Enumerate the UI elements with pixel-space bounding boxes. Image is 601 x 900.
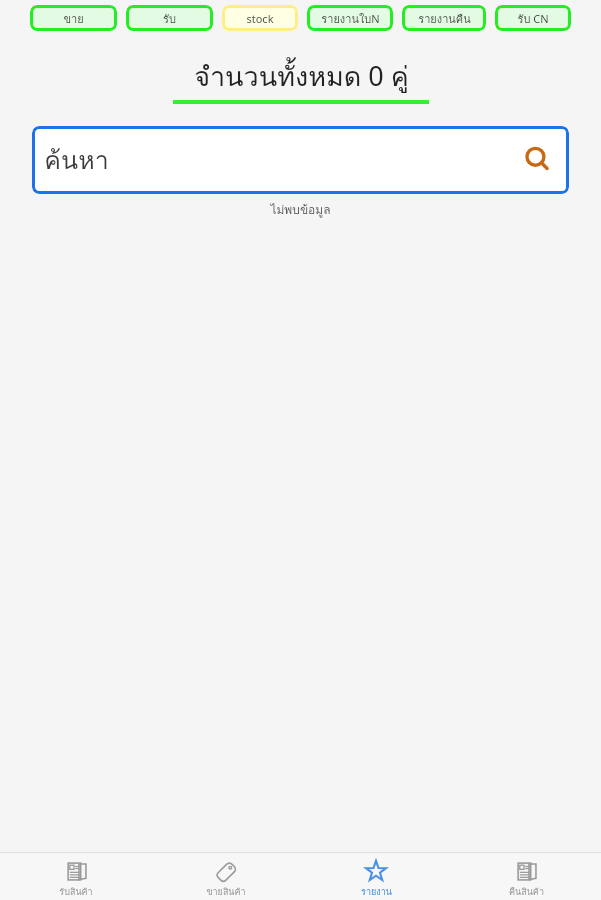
button[interactable]: รับ CN — [495, 5, 571, 31]
button[interactable]: ขาย — [30, 5, 117, 31]
button[interactable]: คืนสินค้า — [451, 855, 601, 899]
staticText: รับ CN — [517, 10, 549, 27]
staticText: รับ — [163, 10, 176, 27]
other: Search — [521, 143, 555, 177]
button[interactable]: รายงานคืน — [402, 5, 486, 31]
staticText: รายงาน — [361, 885, 392, 899]
staticText: ขาย — [63, 10, 84, 27]
staticText: คืนสินค้า — [509, 885, 544, 899]
button[interactable]: ค้นหา — [32, 126, 569, 194]
button[interactable]: รายงานใบN — [307, 5, 393, 31]
button[interactable]: stock — [222, 5, 298, 31]
button[interactable]: รายงาน — [301, 855, 451, 899]
staticText: รับสินค้า — [59, 885, 93, 899]
staticText: ค้นหา — [44, 140, 109, 180]
button[interactable]: ขายสินค้า — [151, 855, 301, 899]
staticText: ไม่พบข้อมูล — [270, 200, 331, 219]
staticText: ขายสินค้า — [206, 885, 246, 899]
button[interactable]: รับ — [126, 5, 213, 31]
staticText: จำนวนทั้งหมด 0 คู่ — [194, 55, 409, 98]
staticText: รายงานใบN — [321, 10, 380, 27]
staticText: รายงานคืน — [418, 10, 471, 27]
staticText: stock — [246, 11, 274, 26]
button[interactable]: รับสินค้า — [0, 855, 151, 899]
